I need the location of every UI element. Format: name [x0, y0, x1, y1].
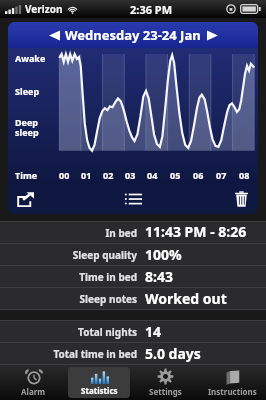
staticText: 11:43 PM - 8:26 AM — [145, 222, 266, 243]
staticText: Instructions — [208, 386, 257, 397]
staticText: Alarm — [21, 386, 46, 397]
button[interactable]: Previous day — [43, 23, 65, 47]
staticText: Sleep quality — [72, 248, 137, 262]
button[interactable]: Total nights — [0, 321, 266, 342]
button[interactable]: Share — [8, 184, 92, 214]
button[interactable]: Statistics — [68, 367, 130, 398]
button[interactable]: Time in bed — [0, 266, 266, 287]
button[interactable]: Alarm — [2, 367, 64, 398]
staticText: Sleep — [15, 85, 40, 97]
staticText: Total nights — [78, 325, 137, 339]
staticText: 8:43 — [145, 267, 173, 286]
staticText: Time — [15, 169, 38, 181]
staticText: 02 — [103, 169, 114, 181]
staticText: 04 — [147, 169, 158, 181]
staticText: Settings — [149, 386, 182, 397]
staticText: 03 — [125, 169, 136, 181]
staticText: 14 — [145, 322, 162, 341]
button[interactable]: Next day — [201, 23, 223, 47]
button[interactable]: In bed — [0, 222, 266, 243]
staticText: Awake — [15, 52, 46, 64]
staticText: Wednesday 23-24 Jan — [65, 26, 201, 44]
staticText: 100% — [145, 245, 182, 264]
staticText: 07 — [216, 169, 227, 181]
button[interactable]: Instructions — [201, 367, 264, 398]
staticText: 2:36 PM — [130, 2, 173, 17]
staticText: Deep sleep — [15, 116, 39, 138]
staticText: Sleep notes — [79, 292, 137, 306]
staticText: In bed — [105, 226, 137, 240]
staticText: 00 — [59, 169, 70, 181]
staticText: Total time in bed — [53, 347, 137, 361]
staticText: Time in bed — [79, 270, 137, 284]
staticText: 01 — [81, 169, 92, 181]
staticText: 08 — [239, 169, 250, 181]
staticText: 05 — [170, 169, 181, 181]
staticText: Verizon — [25, 2, 63, 16]
staticText: 5.0 days — [145, 344, 201, 363]
staticText: 06 — [193, 169, 204, 181]
staticText: Statistics — [81, 385, 118, 396]
button[interactable]: Sleep notes — [0, 288, 266, 309]
staticText: Worked out — [145, 289, 227, 308]
button[interactable]: Settings — [134, 367, 197, 398]
button[interactable]: Total time in bed — [0, 343, 266, 364]
button[interactable]: Delete — [175, 184, 258, 214]
button[interactable]: List view — [92, 184, 175, 214]
button[interactable]: Sleep quality — [0, 244, 266, 265]
